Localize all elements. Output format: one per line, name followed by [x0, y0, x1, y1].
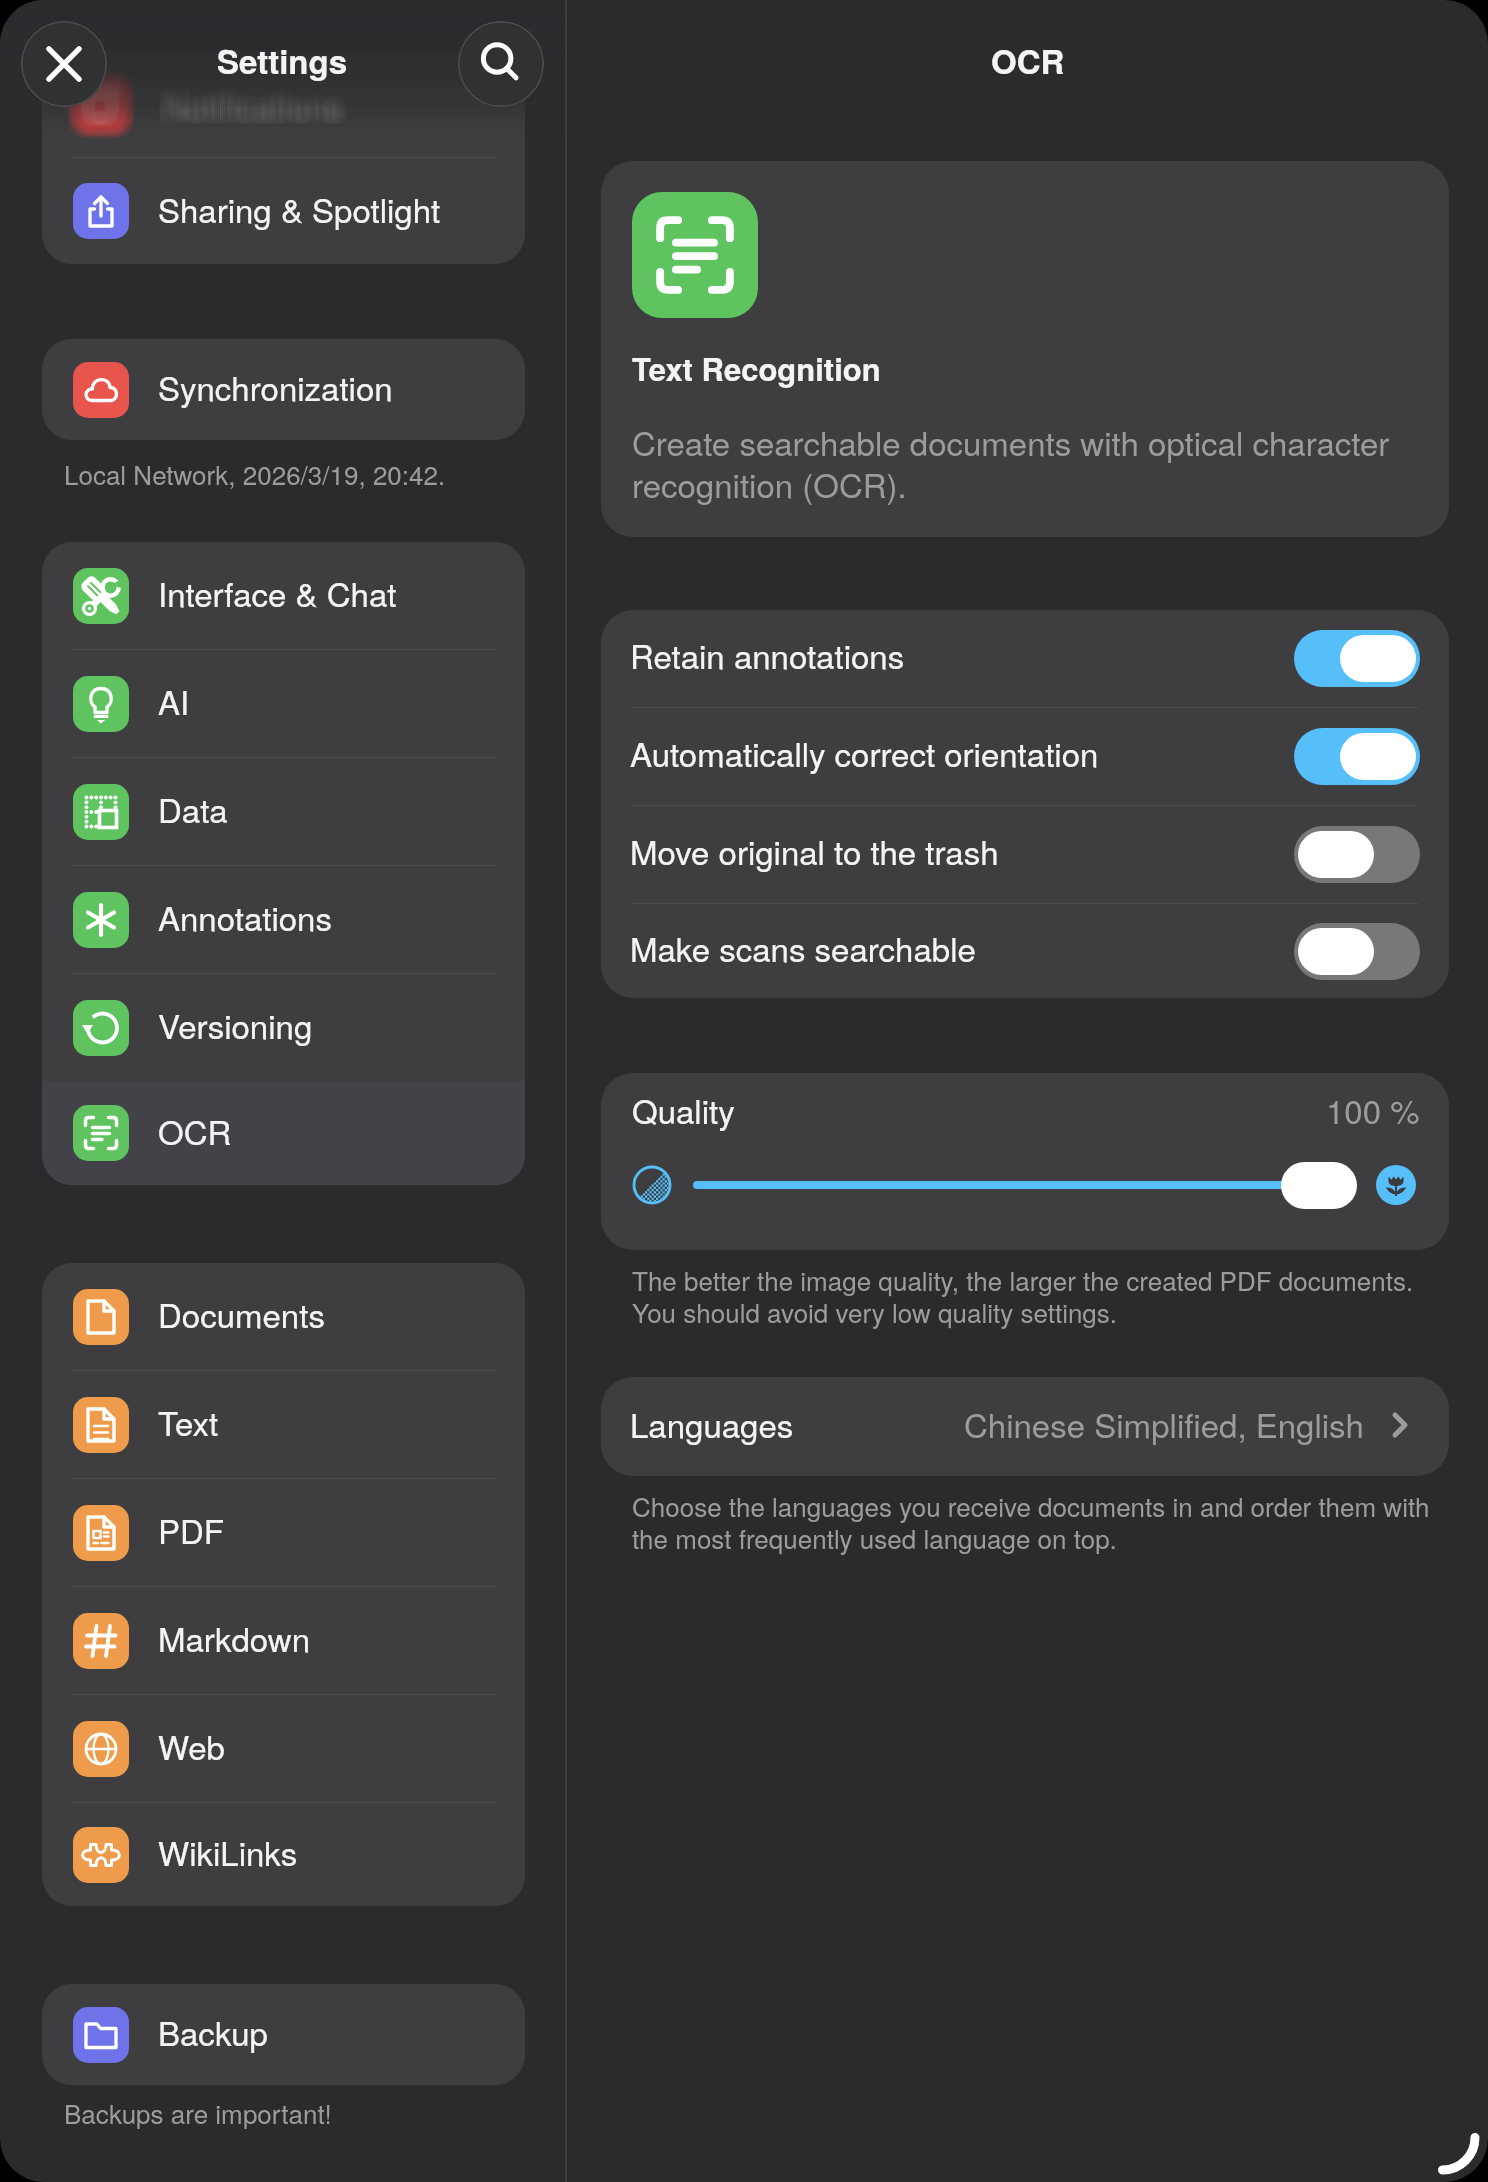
button[interactable]: Close — [21, 21, 107, 107]
staticText: Move original to the trash — [630, 827, 999, 874]
button[interactable]: Web — [42, 1695, 525, 1802]
staticText: Notifications — [165, 76, 345, 123]
staticText: Notifications — [169, 80, 349, 127]
button[interactable]: Annotations — [42, 866, 525, 973]
staticText: Web — [158, 1722, 225, 1769]
staticText: WikiLinks — [158, 1828, 298, 1875]
staticText: Notifications — [163, 86, 343, 133]
staticText: Notifications — [159, 78, 339, 125]
button[interactable]: Retain annotations — [601, 610, 1449, 707]
staticText: Notifications — [169, 76, 349, 123]
button[interactable]: Toggle off — [1294, 923, 1420, 980]
staticText: Notifications — [165, 82, 345, 129]
button[interactable]: Move original to the trash — [601, 806, 1449, 903]
button[interactable]: Toggle on — [1294, 630, 1420, 687]
staticText: Annotations — [158, 893, 332, 940]
staticText: Notifications — [167, 86, 347, 133]
button[interactable]: AI — [42, 650, 525, 757]
staticText: Data — [158, 785, 228, 832]
staticText: The better the image quality, the larger… — [632, 1261, 1432, 1331]
staticText: Notifications — [161, 76, 341, 123]
button[interactable]: Interface & Chat — [42, 542, 525, 649]
staticText: Notifications — [169, 84, 349, 131]
staticText: Languages — [630, 1400, 794, 1447]
staticText: Notifications — [161, 84, 341, 131]
button[interactable]: Toggle on — [1294, 728, 1420, 785]
staticText: Notifications — [159, 84, 339, 131]
staticText: Notifications — [163, 84, 343, 131]
staticText: Automatically correct orientation — [630, 729, 1099, 776]
button[interactable]: Quality slider — [1281, 1162, 1357, 1209]
staticText: Notifications — [159, 82, 339, 129]
staticText: Notifications — [163, 80, 343, 127]
button[interactable]: Versioning — [42, 974, 525, 1081]
staticText: Notifications — [159, 86, 339, 133]
staticText: Backup — [158, 2008, 268, 2055]
staticText: Backups are important! — [64, 2094, 332, 2131]
staticText: Notifications — [159, 80, 339, 127]
staticText: Text — [158, 1398, 219, 1445]
staticText: Notifications — [167, 82, 347, 129]
staticText: Text Recognition — [632, 346, 881, 390]
staticText: Create searchable documents with optical… — [632, 418, 1422, 507]
button[interactable]: Text — [42, 1371, 525, 1478]
staticText: Notifications — [167, 84, 347, 131]
staticText: Retain annotations — [630, 631, 905, 678]
staticText: Notifications — [161, 74, 341, 121]
staticText: Notifications — [157, 74, 337, 121]
staticText: Choose the languages you receive documen… — [632, 1487, 1432, 1557]
staticText: Notifications — [157, 84, 337, 131]
button[interactable]: Automatically correct orientation — [601, 708, 1449, 805]
staticText: Notifications — [163, 82, 343, 129]
staticText: AI — [158, 677, 190, 724]
staticText: Notifications — [161, 82, 341, 129]
staticText: OCR — [991, 37, 1065, 84]
staticText: Notifications — [165, 78, 345, 125]
staticText: Notifications — [167, 80, 347, 127]
staticText: Notifications — [169, 82, 349, 129]
button[interactable]: Make scans searchable — [601, 904, 1449, 998]
staticText: Notifications — [165, 80, 345, 127]
staticText: Notifications — [157, 82, 337, 129]
staticText: Notifications — [163, 76, 343, 123]
button[interactable]: Search — [458, 21, 544, 107]
staticText: Notifications — [157, 86, 337, 133]
staticText: Notifications — [161, 86, 341, 133]
staticText: Synchronization — [158, 363, 393, 410]
staticText: Make scans searchable — [630, 924, 976, 971]
staticText: Documents — [158, 1290, 325, 1337]
button[interactable]: Backup — [42, 1984, 525, 2085]
staticText: Settings — [217, 37, 348, 84]
staticText: Notifications — [157, 80, 337, 127]
staticText: Notifications — [161, 80, 341, 127]
staticText: Notifications — [165, 86, 345, 133]
staticText: Chinese Simplified, English — [964, 1400, 1364, 1447]
staticText: Notifications — [159, 76, 339, 123]
staticText: Notifications — [163, 78, 343, 125]
staticText: Notifications — [163, 74, 343, 121]
button[interactable]: WikiLinks — [42, 1803, 525, 1906]
button[interactable]: Toggle off — [1294, 826, 1420, 883]
staticText: Quality — [632, 1086, 735, 1133]
staticText: Notifications — [161, 78, 341, 125]
staticText: Notifications — [157, 76, 337, 123]
staticText: Notifications — [167, 74, 347, 121]
staticText: Versioning — [158, 1001, 313, 1048]
staticText: PDF — [158, 1506, 224, 1553]
staticText: Interface & Chat — [158, 569, 397, 616]
button[interactable]: Languages — [601, 1377, 1449, 1476]
button[interactable]: Data — [42, 758, 525, 865]
button[interactable]: Sharing & Spotlight — [42, 158, 525, 264]
staticText: Notifications — [169, 78, 349, 125]
staticText: Sharing & Spotlight — [158, 185, 441, 232]
button[interactable]: PDF — [42, 1479, 525, 1586]
staticText: Notifications — [159, 74, 339, 121]
button[interactable]: Synchronization — [42, 339, 525, 440]
staticText: Notifications — [167, 76, 347, 123]
staticText: 100 % — [1326, 1086, 1420, 1133]
button[interactable]: Documents — [42, 1263, 525, 1370]
staticText: OCR — [158, 1107, 232, 1154]
staticText: Notifications — [165, 84, 345, 131]
button[interactable]: OCR — [42, 1081, 525, 1185]
button[interactable]: Markdown — [42, 1587, 525, 1694]
